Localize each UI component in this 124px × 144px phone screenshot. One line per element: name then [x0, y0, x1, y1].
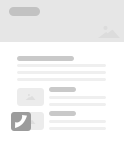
button[interactable]: Call — [11, 112, 31, 131]
